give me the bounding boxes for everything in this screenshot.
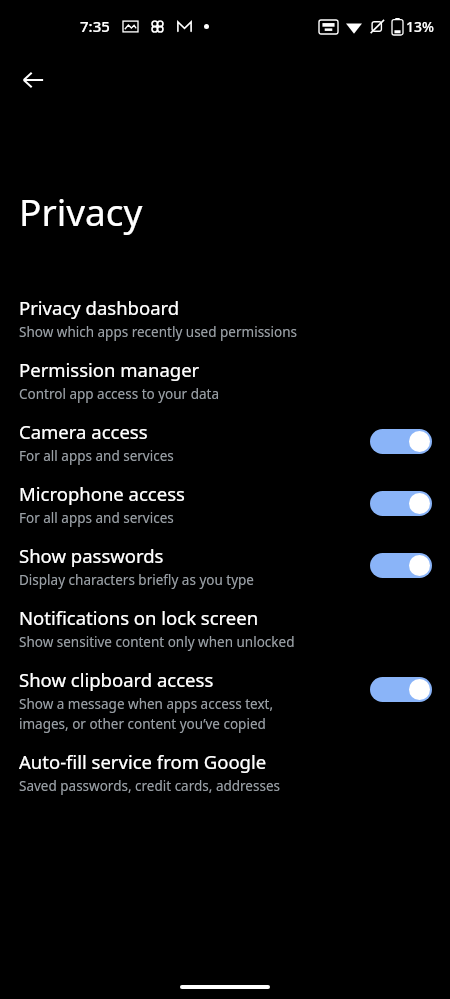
staticText: Microphone access	[19, 481, 185, 506]
staticText: Privacy	[19, 186, 143, 236]
button[interactable]: Permission manager	[0, 349, 450, 411]
button[interactable]: Microphone access	[0, 473, 450, 535]
staticText: Privacy dashboard	[19, 295, 180, 320]
button[interactable]: Back	[13, 60, 53, 100]
staticText: For all apps and services	[19, 447, 174, 465]
staticText: Notifications on lock screen	[19, 605, 259, 630]
staticText: 13%	[406, 17, 434, 36]
staticText: Saved passwords, credit cards, addresses	[19, 777, 280, 795]
staticText: Permission manager	[19, 357, 200, 382]
button[interactable]: Privacy dashboard	[0, 287, 450, 349]
staticText: Control app access to your data	[19, 385, 220, 403]
staticText: Show which apps recently used permission…	[19, 323, 298, 341]
button[interactable]: Camera access	[370, 429, 432, 454]
staticText: Show clipboard access	[19, 667, 214, 692]
button[interactable]: Show clipboard access	[370, 677, 432, 702]
staticText: Auto-fill service from Google	[19, 749, 267, 774]
button[interactable]: Camera access	[0, 411, 450, 473]
button[interactable]: Microphone access	[370, 491, 432, 516]
staticText: Display characters briefly as you type	[19, 571, 254, 589]
button[interactable]: Show passwords	[370, 553, 432, 578]
button[interactable]: Show clipboard access	[0, 659, 450, 741]
staticText: Show sensitive content only when unlocke…	[19, 633, 295, 651]
button[interactable]: Auto-fill service from Google	[0, 741, 450, 803]
staticText: Show a message when apps access text, im…	[19, 695, 274, 733]
staticText: For all apps and services	[19, 509, 174, 527]
button[interactable]: Show passwords	[0, 535, 450, 597]
staticText: Camera access	[19, 419, 148, 444]
staticText: Show passwords	[19, 543, 164, 568]
staticText: 7:35	[80, 16, 110, 36]
button[interactable]: Notifications on lock screen	[0, 597, 450, 659]
